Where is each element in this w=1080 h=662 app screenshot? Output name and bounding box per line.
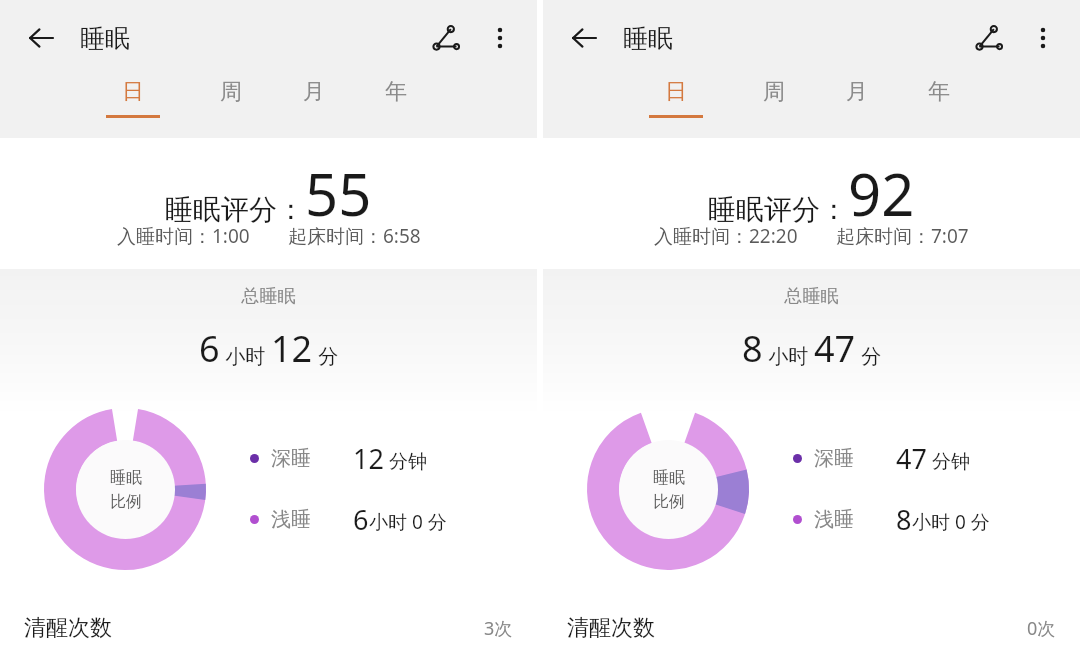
button[interactable]: More options xyxy=(1016,11,1070,65)
staticText: 比例 xyxy=(110,492,142,512)
button[interactable]: 清醒次数 xyxy=(0,594,537,662)
staticText: 小时 xyxy=(220,342,271,369)
staticText: 深睡 xyxy=(271,446,311,471)
staticText: 3次 xyxy=(484,616,513,641)
staticText: 47 xyxy=(896,440,927,477)
staticText: 小时 0 分 xyxy=(912,509,990,535)
staticText: 入睡时间：1:00 xyxy=(117,223,250,249)
staticText: 浅睡 xyxy=(814,507,854,532)
button[interactable]: More options xyxy=(473,11,527,65)
staticText: 8 xyxy=(896,501,912,538)
staticText: 深睡 xyxy=(814,446,854,471)
staticText: 分钟 xyxy=(384,448,427,474)
staticText: 周 xyxy=(763,78,785,106)
staticText: 年 xyxy=(928,78,950,106)
staticText: 睡眠评分： xyxy=(165,192,305,227)
staticText: 浅睡 xyxy=(271,507,311,532)
staticText: 总睡眠 xyxy=(0,285,537,308)
staticText: 92 xyxy=(848,154,915,233)
staticText: 起床时间：7:07 xyxy=(836,223,969,249)
staticText: 清醒次数 xyxy=(24,614,112,642)
button[interactable]: 年 xyxy=(918,76,960,120)
staticText: 分 xyxy=(313,342,339,369)
staticText: 睡眠 xyxy=(80,23,130,54)
staticText: 47 xyxy=(814,324,856,373)
staticText: 分 xyxy=(856,342,882,369)
button[interactable]: 月 xyxy=(836,76,878,120)
button[interactable]: Back xyxy=(557,11,611,65)
staticText: 日 xyxy=(122,78,144,106)
button[interactable]: Share xyxy=(419,11,473,65)
staticText: 12 xyxy=(271,324,313,373)
staticText: 周 xyxy=(220,78,242,106)
staticText: 月 xyxy=(846,78,868,106)
staticText: 入睡时间：22:20 xyxy=(654,223,798,249)
staticText: 年 xyxy=(385,78,407,106)
staticText: 6 xyxy=(199,324,220,373)
button[interactable]: 月 xyxy=(293,76,335,120)
button[interactable]: Share xyxy=(962,11,1016,65)
button[interactable]: Back xyxy=(14,11,68,65)
staticText: 总睡眠 xyxy=(543,285,1080,308)
staticText: 0次 xyxy=(1027,616,1056,641)
staticText: 睡眠 xyxy=(623,23,673,54)
staticText: 12 xyxy=(353,440,384,477)
staticText: 55 xyxy=(305,154,372,233)
staticText: 睡眠 xyxy=(653,468,685,488)
staticText: 日 xyxy=(665,78,687,106)
staticText: 起床时间：6:58 xyxy=(288,223,421,249)
staticText: 比例 xyxy=(653,492,685,512)
staticText: 小时 xyxy=(763,342,814,369)
staticText: 清醒次数 xyxy=(567,614,655,642)
staticText: 小时 0 分 xyxy=(369,509,447,535)
button[interactable]: 日 xyxy=(96,76,170,120)
staticText: 8 xyxy=(742,324,763,373)
staticText: 睡眠 xyxy=(110,468,142,488)
button[interactable]: 清醒次数 xyxy=(543,594,1080,662)
staticText: 6 xyxy=(353,501,369,538)
button[interactable]: 周 xyxy=(210,76,252,120)
button[interactable]: 年 xyxy=(375,76,417,120)
button[interactable]: 日 xyxy=(639,76,713,120)
staticText: 分钟 xyxy=(927,448,970,474)
staticText: 月 xyxy=(303,78,325,106)
staticText: 睡眠评分： xyxy=(708,192,848,227)
button[interactable]: 周 xyxy=(753,76,795,120)
